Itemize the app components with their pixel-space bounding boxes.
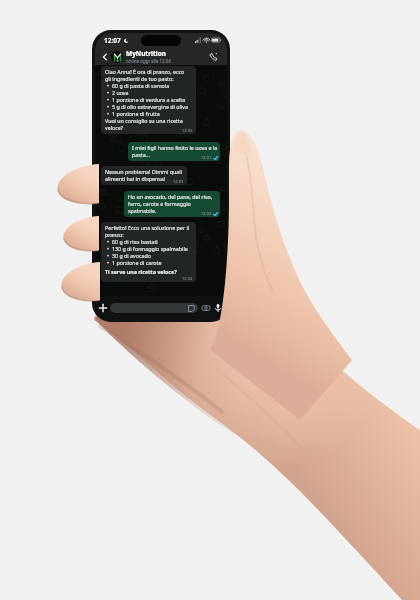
staticText: pasta... (132, 151, 150, 158)
staticText: • (107, 245, 109, 252)
button[interactable]: Ho un avocado, del pane, del riso, (124, 191, 220, 217)
button[interactable]: MyNutrition (110, 49, 207, 64)
staticText: alimenti hai in dispensa! (105, 175, 166, 182)
staticText: Ti serve una ricetta veloce? (105, 268, 177, 275)
staticText: 2 uova (112, 89, 129, 96)
button[interactable]: I miei figli hanno finito le uova e la (128, 142, 220, 161)
button[interactable]: Voice message (212, 302, 223, 313)
staticText: 12:07 (104, 36, 121, 45)
staticText: • (107, 238, 109, 245)
button[interactable]: Perfetto! Ecco una soluzione per il (101, 222, 196, 282)
staticText: spalmabile. (128, 207, 157, 214)
staticText: MyNutrition (126, 49, 167, 58)
staticText: 12:03 (201, 211, 212, 216)
staticText: • (107, 89, 109, 96)
button[interactable]: Back (99, 51, 110, 62)
button[interactable]: Attach (97, 302, 109, 314)
staticText: • (107, 259, 109, 266)
staticText: Ho un avocado, del pane, del riso, (128, 193, 213, 200)
staticText: veloce? (105, 124, 124, 131)
staticText: • (107, 110, 109, 117)
button[interactable] (110, 303, 198, 313)
staticText: 12:00 (182, 128, 193, 133)
staticText: • (107, 82, 109, 89)
staticText: Vuoi un consiglio su una ricetta (105, 117, 183, 124)
button[interactable]: Nessun problema! Dimmi quali (101, 166, 187, 185)
staticText: 12:01 (201, 155, 212, 160)
staticText: • (107, 252, 109, 259)
staticText: Nessun problema! Dimmi quali (105, 168, 183, 175)
staticText: 30 g di avocado (112, 252, 151, 259)
staticText: 1 porzione di carote (112, 259, 162, 266)
staticText: 1 porzione di verdura a scelta (112, 96, 186, 103)
button[interactable]: Ciao Anna! È ora di pranzo, ecco (101, 66, 196, 134)
staticText: • (107, 103, 109, 110)
staticText: • (107, 96, 109, 103)
staticText: Perfetto! Ecco una soluzione per il (105, 224, 190, 231)
staticText: farro, carote e formaggio (128, 200, 191, 207)
staticText: Ciao Anna! È ora di pranzo, ecco (105, 68, 185, 75)
staticText: 60 g di riso bastati (112, 238, 158, 245)
staticText: 130 g di formaggio spalmabile (112, 245, 188, 252)
staticText: gli ingredienti de tuo pasto: (105, 75, 174, 82)
button[interactable]: Camera (200, 302, 211, 313)
staticText: 5 g di olio extravergine di oliva (112, 103, 188, 110)
button[interactable]: Call (207, 50, 219, 62)
staticText: 60 g di pasta di semola (112, 82, 170, 89)
staticText: 12:04 (182, 276, 193, 281)
staticText: I miei figli hanno finito le uova e la (132, 144, 218, 151)
staticText: pranzo: (105, 231, 124, 238)
staticText: 12:03 (173, 179, 184, 184)
staticText: online oggi alle 12:06 (126, 58, 171, 64)
staticText: 1 porzione di frutta (112, 110, 160, 117)
